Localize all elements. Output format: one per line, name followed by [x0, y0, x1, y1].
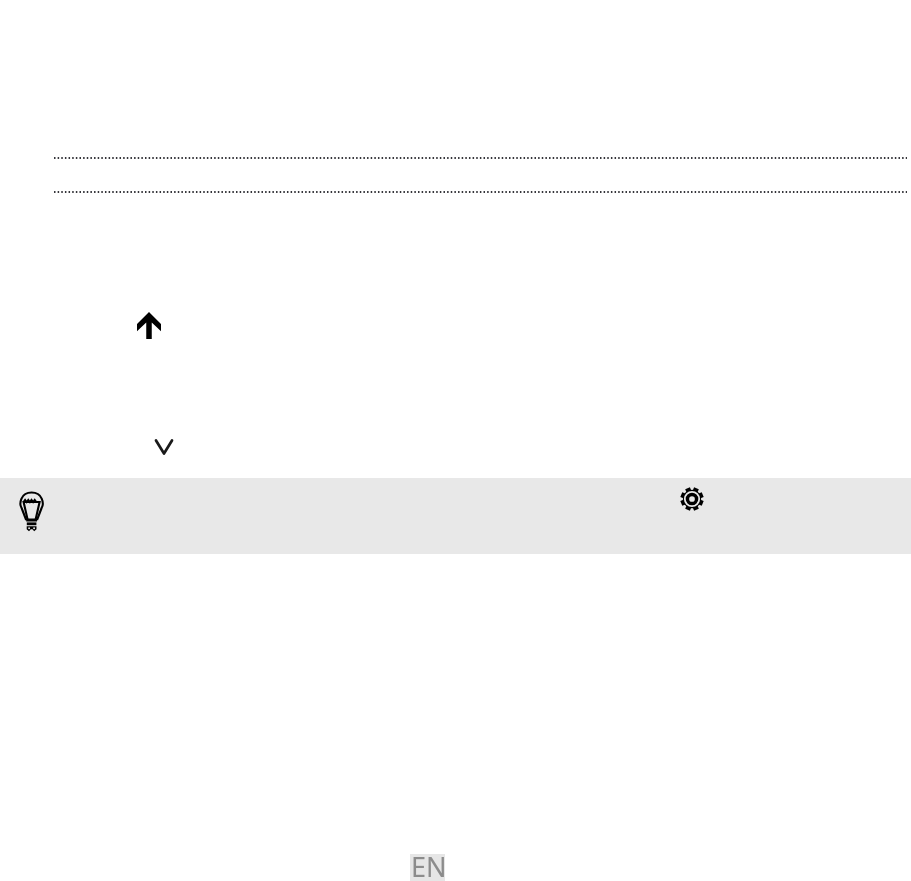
button[interactable]: Scroll to top [125, 298, 173, 346]
button[interactable]: Settings [668, 475, 716, 523]
staticText: EN [411, 848, 446, 878]
button[interactable]: Tips [8, 481, 56, 529]
button[interactable]: Expand [140, 422, 188, 470]
button[interactable]: EN [410, 854, 445, 881]
